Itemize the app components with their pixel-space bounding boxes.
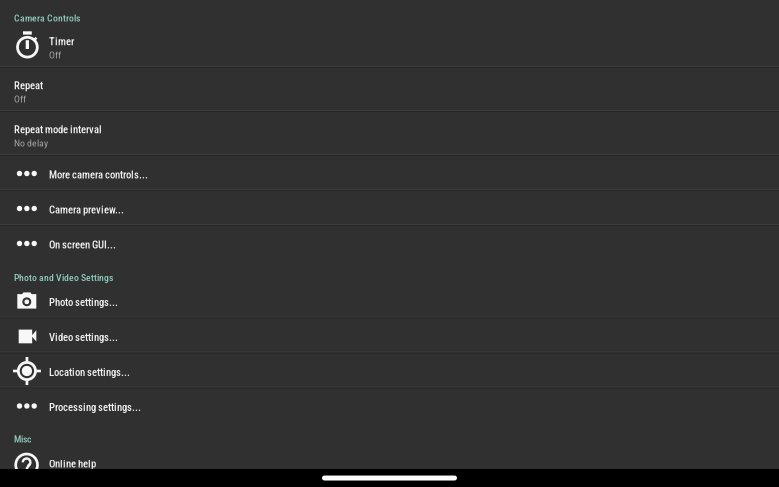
staticText: Repeat xyxy=(14,79,43,92)
staticText: Photo settings... xyxy=(49,296,118,309)
button[interactable]: Repeat xyxy=(0,68,779,112)
button[interactable]: More camera controls... xyxy=(0,156,779,191)
staticText: No delay xyxy=(14,137,48,149)
button[interactable]: Timer xyxy=(0,24,779,68)
staticText: Off xyxy=(14,93,26,105)
button[interactable]: Photo settings... xyxy=(0,283,779,318)
button[interactable]: Location settings... xyxy=(0,353,779,388)
button[interactable]: On screen GUI... xyxy=(0,226,779,261)
staticText: Location settings... xyxy=(49,366,130,379)
staticText: Online help xyxy=(49,458,96,470)
staticText: Misc xyxy=(14,434,31,445)
staticText: Repeat mode interval xyxy=(14,123,102,136)
staticText: More camera controls... xyxy=(49,169,148,181)
staticText: Processing settings... xyxy=(49,401,141,414)
staticText: On screen GUI... xyxy=(49,239,116,251)
staticText: Camera Controls xyxy=(14,13,80,24)
staticText: Timer xyxy=(49,35,74,48)
button[interactable]: Processing settings... xyxy=(0,388,779,423)
staticText: Video settings... xyxy=(49,331,118,344)
button[interactable]: Video settings... xyxy=(0,318,779,353)
staticText: Off xyxy=(49,49,61,61)
staticText: Photo and Video Settings xyxy=(14,272,113,283)
staticText: Camera preview... xyxy=(49,204,124,216)
button[interactable]: Online help xyxy=(0,445,779,480)
button[interactable]: Camera preview... xyxy=(0,191,779,226)
button[interactable]: Repeat mode interval xyxy=(0,112,779,156)
